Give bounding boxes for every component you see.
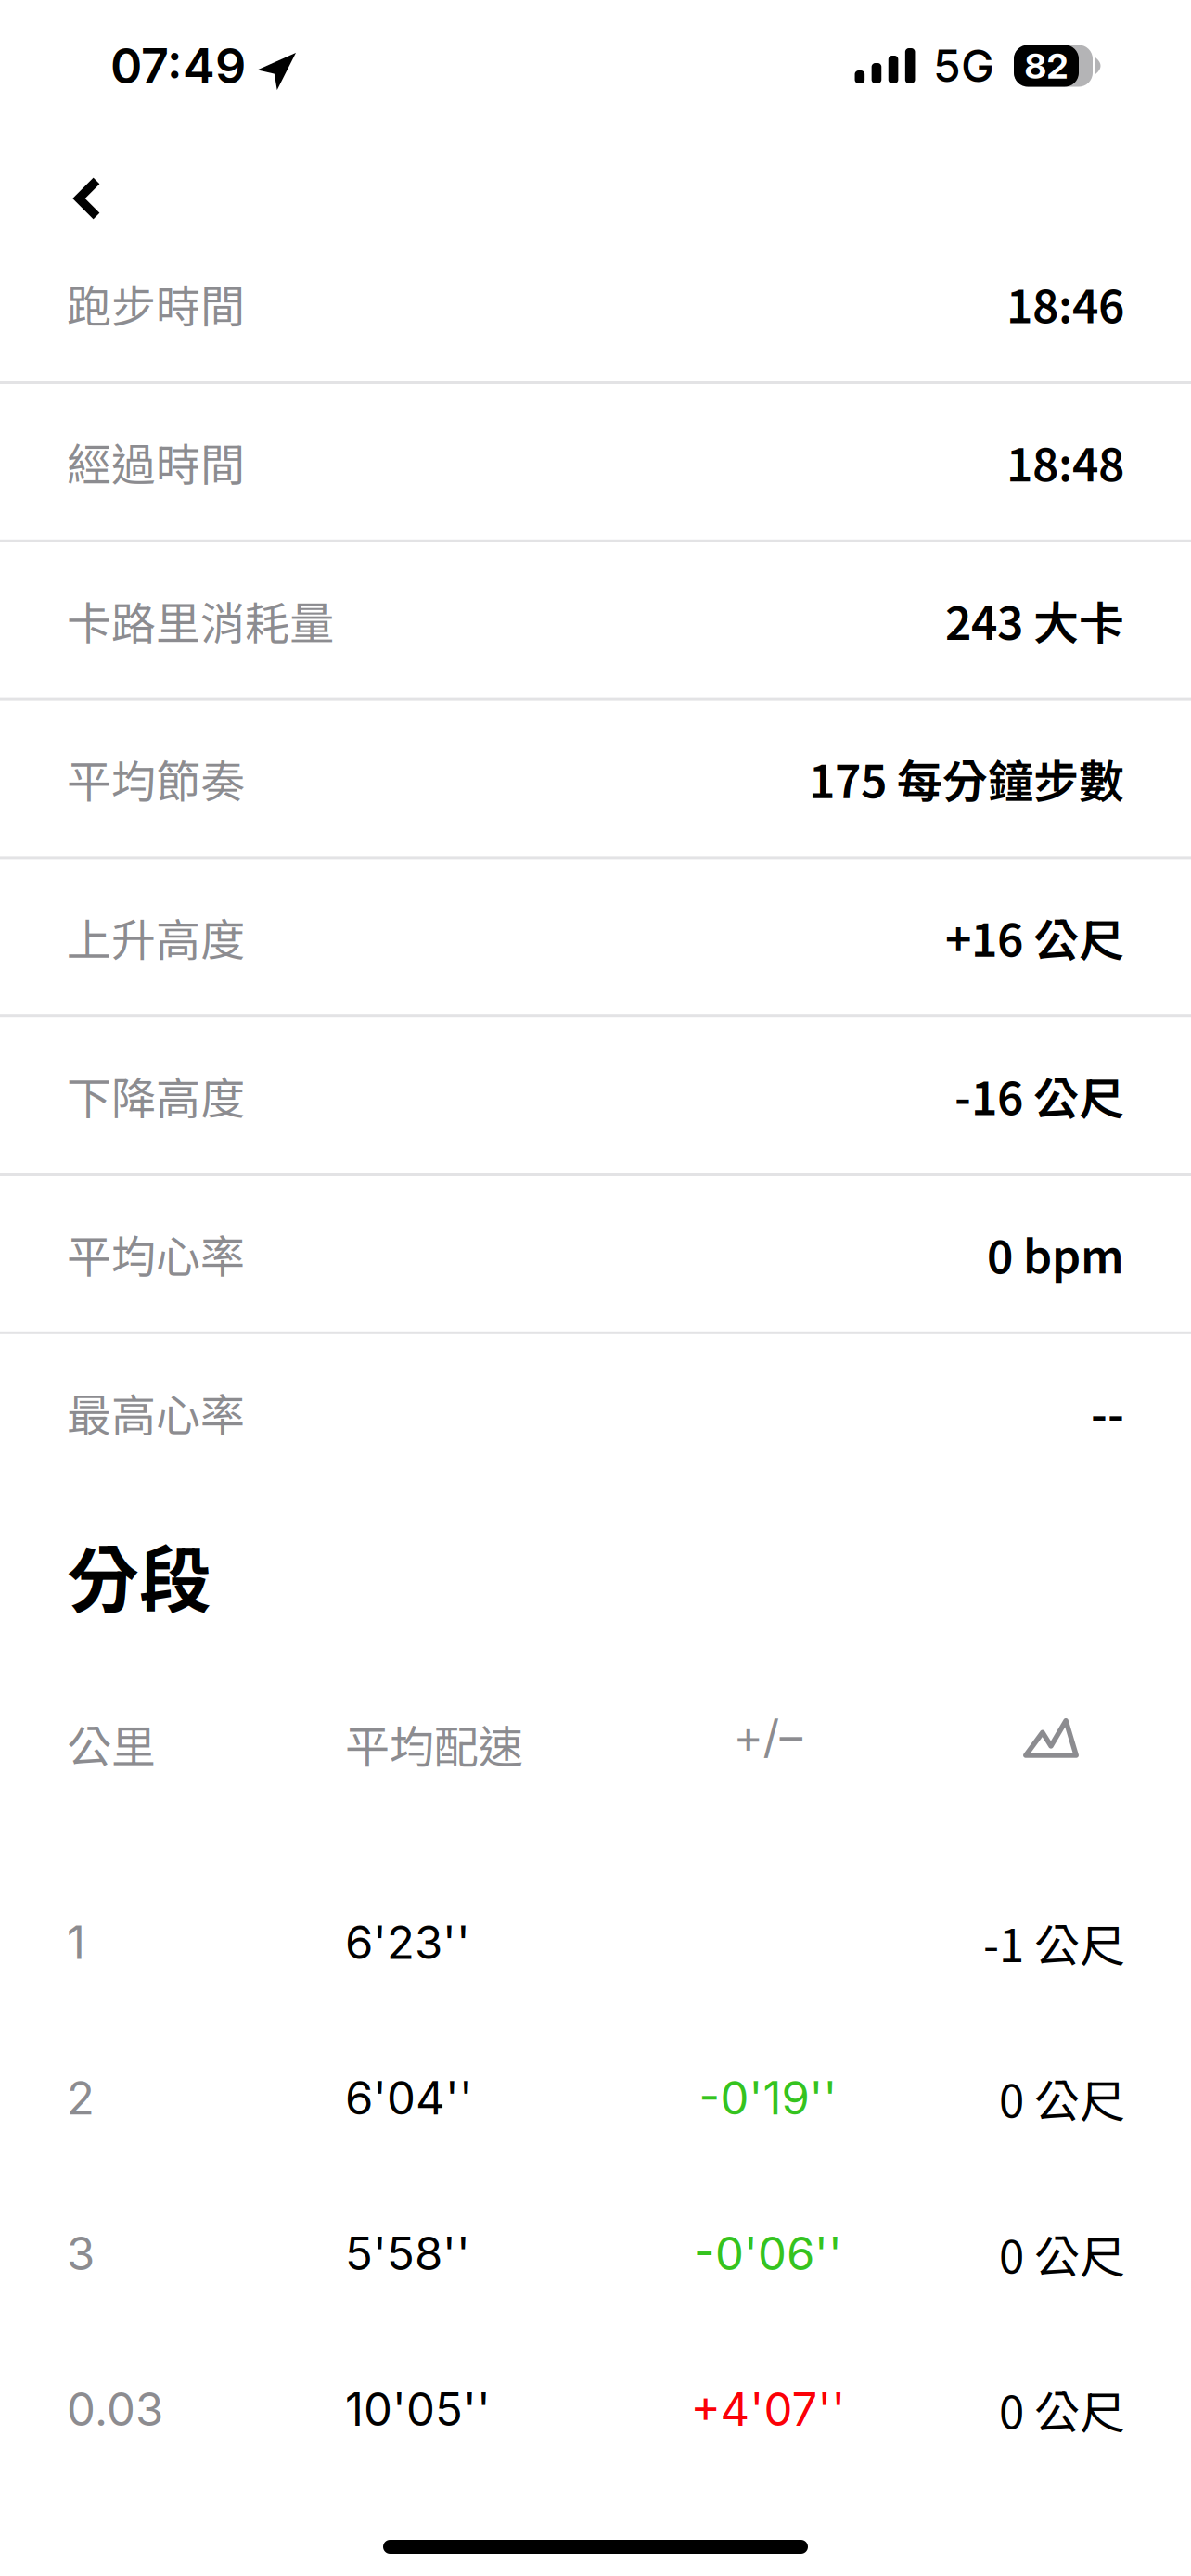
- staticText: 1: [67, 1915, 85, 1970]
- staticText: 跑步時間: [67, 271, 245, 335]
- staticText: 10'05'': [345, 2382, 491, 2437]
- staticText: +/–: [733, 1709, 803, 1764]
- staticText: 下降高度: [67, 1063, 245, 1127]
- staticText: 0.03: [67, 2382, 163, 2437]
- staticText: +4'07'': [691, 2382, 845, 2437]
- staticText: 2: [67, 2071, 95, 2126]
- staticText: 公里: [67, 1711, 156, 1776]
- staticText: -16 公尺: [954, 1062, 1124, 1128]
- staticText: +16 公尺: [945, 904, 1124, 970]
- staticText: 經過時間: [67, 429, 245, 494]
- staticText: -0'19'': [699, 2071, 837, 2126]
- staticText: 0 bpm: [987, 1221, 1124, 1287]
- staticText: 07:49: [110, 37, 246, 95]
- staticText: 平均心率: [67, 1221, 245, 1286]
- button[interactable]: Back: [0, 132, 166, 226]
- staticText: -0'06'': [694, 2226, 842, 2281]
- staticText: 243 大卡: [945, 587, 1124, 653]
- staticText: -1 公尺: [983, 1909, 1125, 1975]
- staticText: 18:46: [1006, 270, 1124, 336]
- staticText: 0 公尺: [999, 2221, 1125, 2287]
- staticText: 卡路里消耗量: [67, 588, 334, 652]
- staticText: 0 公尺: [999, 2065, 1125, 2131]
- staticText: 0 公尺: [999, 2376, 1125, 2442]
- staticText: --: [1091, 1379, 1124, 1445]
- staticText: 6'23'': [345, 1915, 470, 1970]
- staticText: 分段: [67, 1522, 211, 1627]
- staticText: 18:48: [1006, 429, 1124, 495]
- staticText: 5'58'': [345, 2226, 470, 2281]
- staticText: 175 每分鐘步數: [809, 746, 1124, 811]
- staticText: 上升高度: [67, 905, 245, 969]
- staticText: 6'04'': [345, 2071, 473, 2126]
- staticText: 最高心率: [67, 1380, 245, 1444]
- staticText: 3: [67, 2226, 95, 2281]
- staticText: 平均節奏: [67, 746, 245, 811]
- staticText: 82: [1025, 45, 1068, 87]
- staticText: 5G: [933, 39, 994, 93]
- staticText: 平均配速: [345, 1711, 523, 1776]
